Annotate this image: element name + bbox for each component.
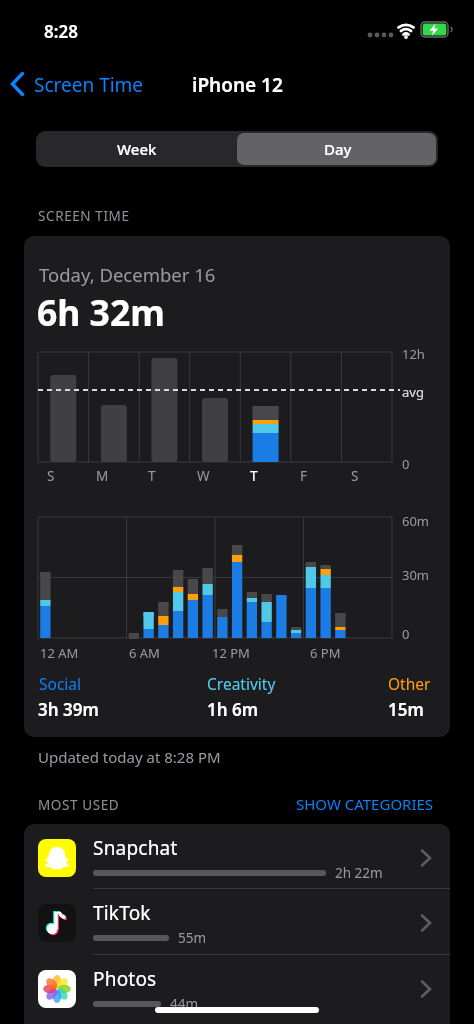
staticText: Other	[388, 673, 431, 694]
button[interactable]: Screen Time	[8, 66, 168, 102]
staticText: T	[250, 467, 258, 485]
staticText: SHOW CATEGORIES	[296, 794, 434, 814]
staticText: T	[148, 467, 156, 485]
button[interactable]: Photos	[24, 955, 450, 1021]
staticText: 2h 22m	[335, 864, 383, 882]
staticText: 0	[402, 455, 410, 473]
staticText: 15m	[388, 698, 424, 721]
staticText: F	[300, 467, 308, 485]
button[interactable]: SHOW CATEGORIES	[250, 794, 434, 814]
staticText: 1h 6m	[207, 698, 259, 721]
button[interactable]: Week	[36, 131, 237, 167]
staticText: S	[47, 467, 55, 485]
staticText: 30m	[402, 566, 430, 584]
staticText: SCREEN TIME	[38, 207, 130, 225]
button[interactable]: TikTok	[24, 889, 450, 955]
staticText: Day	[324, 139, 352, 159]
staticText: 12 PM	[212, 644, 250, 662]
staticText: Creativity	[207, 673, 276, 694]
staticText: 60m	[402, 512, 430, 530]
staticText: TikTok	[93, 900, 151, 926]
staticText: 8:28	[44, 20, 78, 43]
staticText: 6h 32m	[37, 288, 165, 336]
staticText: 6 AM	[129, 644, 160, 662]
staticText: 0	[402, 625, 410, 643]
staticText: Week	[117, 139, 157, 159]
staticText: Screen Time	[34, 72, 144, 98]
staticText: avg	[402, 383, 424, 401]
staticText: Photos	[93, 966, 157, 992]
staticText: M	[96, 467, 109, 485]
staticText: 3h 39m	[38, 698, 99, 721]
staticText: MOST USED	[38, 796, 120, 814]
staticText: Today, December 16	[39, 262, 216, 287]
staticText: 12h	[402, 345, 425, 363]
staticText: 6 PM	[310, 644, 341, 662]
staticText: iPhone 12	[192, 72, 283, 98]
staticText: 44m	[170, 995, 199, 1013]
staticText: Snapchat	[93, 835, 178, 861]
staticText: W	[197, 467, 210, 485]
staticText: 55m	[178, 929, 207, 947]
button[interactable]: Snapchat	[24, 824, 450, 890]
staticText: Updated today at 8:28 PM	[38, 747, 221, 767]
staticText: Social	[39, 673, 82, 694]
staticText: S	[351, 467, 359, 485]
staticText: 12 AM	[40, 644, 79, 662]
button[interactable]: Day	[237, 131, 438, 167]
